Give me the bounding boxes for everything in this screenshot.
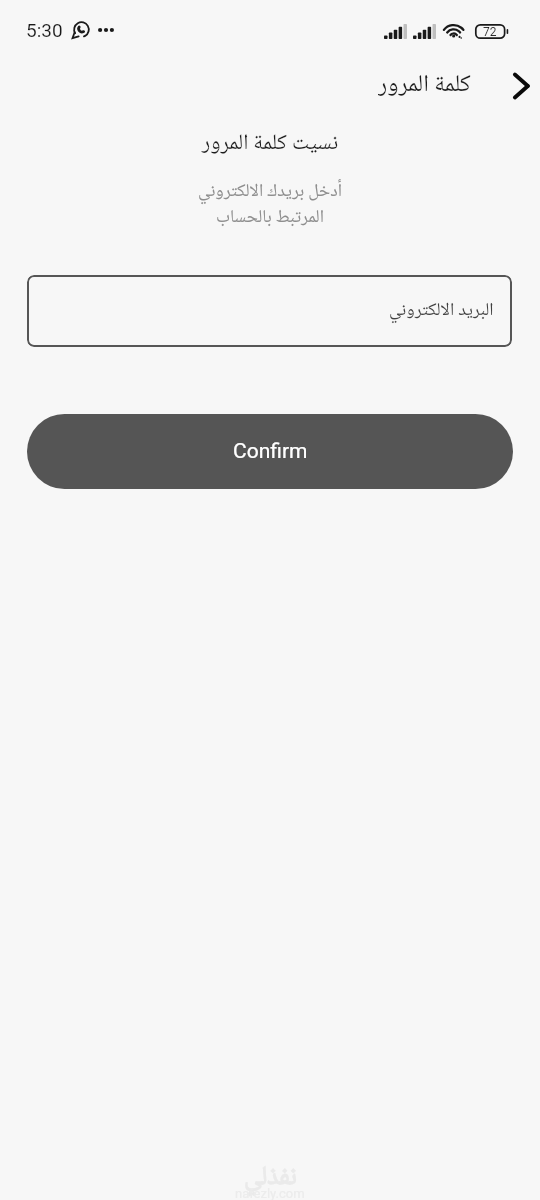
staticText: أدخل بريدك الالكتروني المرتبط بالحساب — [0, 177, 540, 233]
staticText: نسيت كلمة المرور — [0, 125, 540, 162]
button[interactable]: كلمة المرور — [378, 65, 471, 101]
staticText: 72 — [483, 25, 497, 39]
staticText: نفذلي — [244, 1156, 297, 1200]
staticText: كلمة المرور — [378, 65, 471, 101]
staticText: البريد الالكتروني — [389, 296, 494, 327]
button[interactable]: البريد الالكتروني — [27, 275, 512, 347]
button[interactable]: Confirm — [27, 414, 513, 489]
staticText: Confirm — [233, 439, 308, 464]
button[interactable]: Back — [500, 65, 540, 106]
staticText: 5:30 — [26, 19, 63, 41]
staticText: nafezly.com — [235, 1186, 305, 1200]
